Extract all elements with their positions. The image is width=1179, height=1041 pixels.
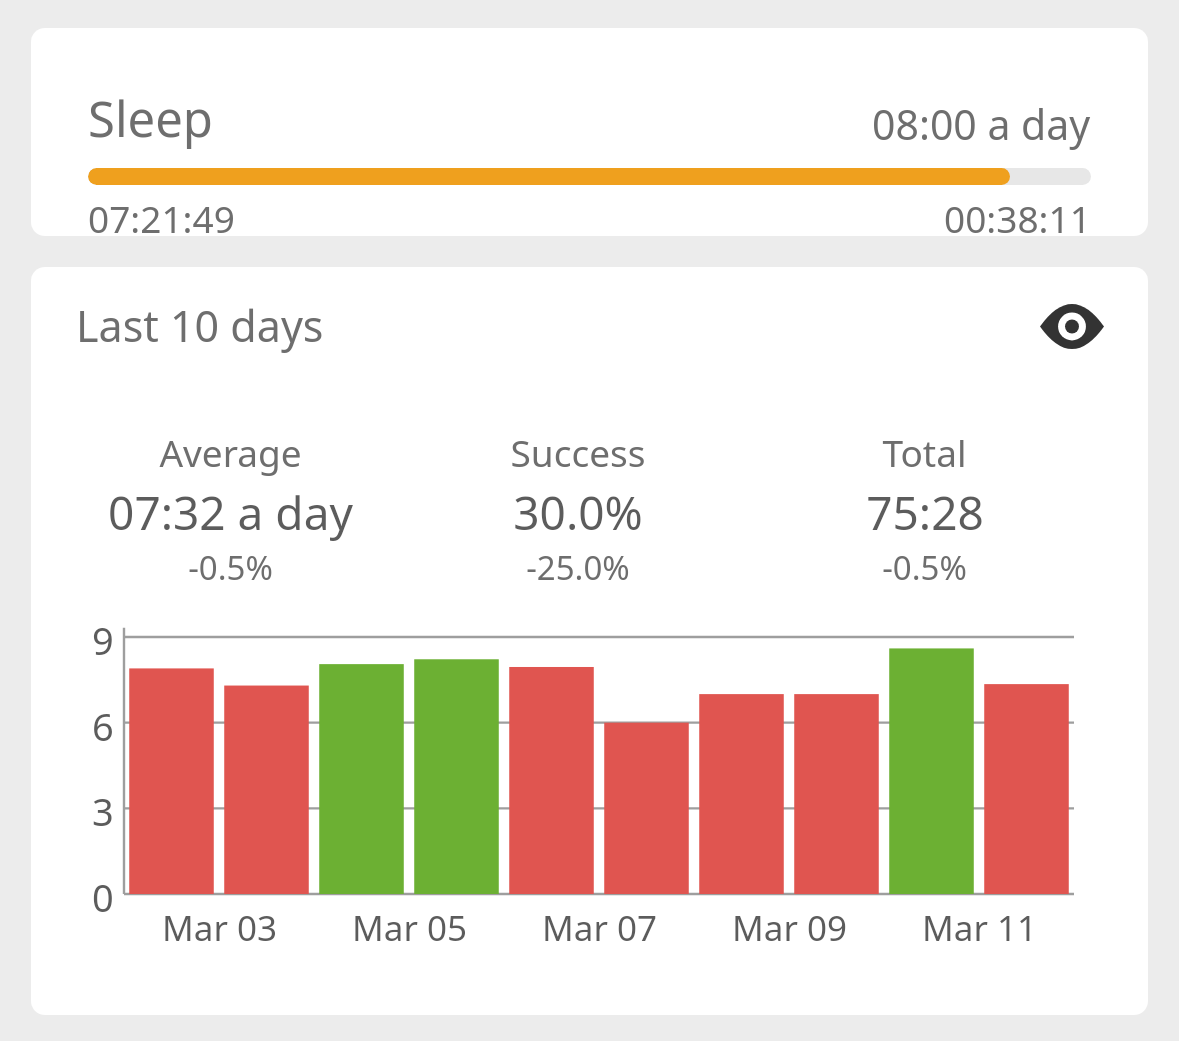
staticText: Sleep [88, 85, 213, 152]
staticText: 3 [92, 785, 114, 837]
staticText: -0.5% [188, 545, 273, 590]
staticText: -25.0% [526, 545, 630, 590]
staticText: Total [882, 427, 967, 477]
staticText: 30.0% [513, 481, 643, 544]
staticText: 07:21:49 [88, 193, 235, 236]
staticText: 00:38:11 [944, 193, 1091, 236]
staticText: Last 10 days [76, 296, 324, 355]
staticText: Average [159, 427, 302, 477]
staticText: -0.5% [882, 545, 967, 590]
staticText: Mar 09 [732, 904, 847, 952]
staticText: Success [510, 427, 646, 477]
staticText: 0 [92, 871, 114, 923]
staticText: 6 [92, 700, 114, 752]
button[interactable]: Sleep [31, 28, 1148, 236]
staticText: 9 [92, 614, 114, 666]
staticText: Mar 05 [352, 904, 467, 952]
staticText: 08:00 a day [872, 96, 1091, 152]
staticText: Mar 07 [542, 904, 657, 952]
staticText: 07:32 a day [108, 481, 353, 544]
staticText: Mar 11 [922, 904, 1037, 952]
staticText: 75:28 [866, 481, 984, 544]
button[interactable]: Toggle chart visibility [1036, 298, 1108, 354]
staticText: Mar 03 [162, 904, 277, 952]
